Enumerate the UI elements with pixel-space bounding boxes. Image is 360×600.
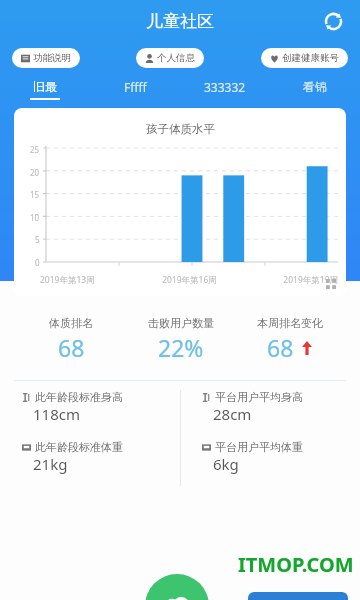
staticText: 10: [30, 212, 40, 223]
staticText: 22%: [158, 332, 204, 363]
staticText: 2019年第19周: [239, 274, 338, 286]
button[interactable]: 个人信息: [136, 48, 204, 68]
staticText: 平台用户平均身高: [215, 390, 303, 404]
staticText: 68: [58, 332, 85, 363]
staticText: 看锦: [303, 79, 327, 94]
staticText: 5: [35, 234, 40, 245]
staticText: 21kg: [33, 454, 68, 474]
staticText: 本周排名变化: [257, 316, 323, 330]
staticText: 6kg: [213, 454, 239, 474]
button[interactable]: 体质排名: [16, 316, 126, 363]
staticText: 体质排名: [49, 316, 93, 330]
button[interactable]: 本周排名变化: [235, 316, 344, 363]
staticText: 0: [35, 257, 40, 268]
staticText: 此年龄段标准体重: [35, 440, 123, 454]
staticText: 15: [30, 189, 40, 200]
staticText: 创建健康账号: [282, 52, 339, 64]
button[interactable]: Fffff: [90, 76, 180, 102]
button[interactable]: 击败用户数量: [126, 316, 235, 363]
staticText: 68: [267, 332, 294, 363]
staticText: 孩子体质水平: [146, 122, 215, 136]
staticText: 此年龄段标准身高: [35, 390, 123, 404]
staticText: 个人信息: [157, 52, 195, 64]
staticText: Fffff: [124, 79, 147, 95]
button[interactable]: Fullscreen: [322, 275, 340, 293]
staticText: 25: [30, 144, 40, 155]
staticText: 击败用户数量: [148, 316, 214, 330]
button[interactable]: 旧最: [0, 76, 90, 103]
staticText: 28cm: [213, 404, 252, 424]
staticText: 2019年第16周: [140, 274, 239, 286]
staticText: 118cm: [33, 404, 80, 424]
button[interactable]: 333332: [180, 76, 270, 102]
button[interactable]: Refresh: [316, 4, 350, 38]
button[interactable]: 孩子体质水平: [14, 108, 346, 296]
staticText: 2019年第13周: [40, 274, 140, 286]
button[interactable]: Add record: [145, 574, 209, 600]
staticText: 儿童社区: [146, 11, 214, 32]
staticText: 旧最: [33, 79, 57, 94]
staticText: 20: [30, 167, 40, 178]
staticText: 平台用户平均体重: [215, 440, 303, 454]
staticText: 功能说明: [33, 52, 71, 64]
button[interactable]: 看锦: [270, 76, 360, 101]
staticText: ITMOP.COM: [238, 551, 354, 578]
button[interactable]: 创建健康账号: [261, 48, 348, 68]
button[interactable]: Action: [248, 592, 348, 600]
staticText: 333332: [204, 79, 246, 95]
button[interactable]: 功能说明: [12, 48, 80, 68]
